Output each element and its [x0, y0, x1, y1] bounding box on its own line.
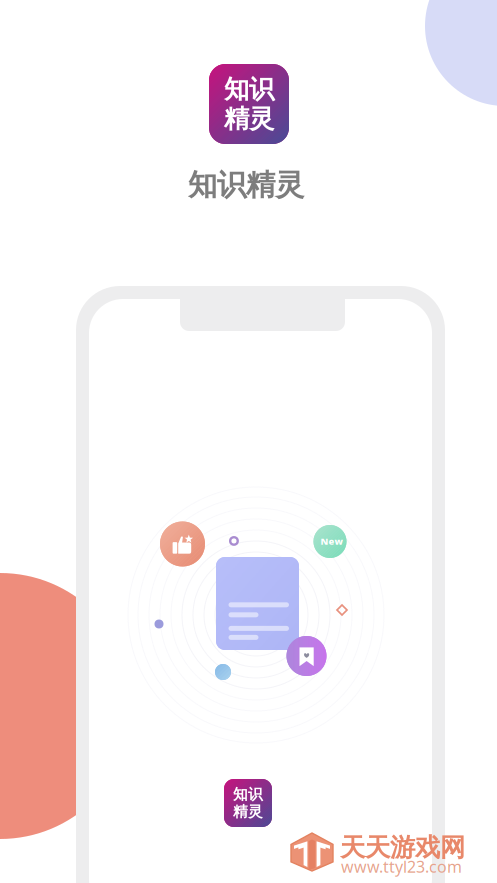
staticText: 知识精灵 [188, 167, 304, 203]
staticText: 天天游戏网 [340, 832, 465, 863]
staticText: 精灵 [224, 103, 274, 134]
staticText: www.ttyl23.com [341, 856, 462, 877]
staticText: New [320, 535, 342, 547]
staticText: 知识 [224, 74, 274, 105]
